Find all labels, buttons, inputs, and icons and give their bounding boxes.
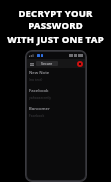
button[interactable]: Bancomer — [27, 104, 85, 122]
staticText: (no text) — [29, 77, 43, 82]
staticText: Facebook — [29, 113, 45, 118]
button[interactable]: Open navigation menu — [29, 61, 35, 67]
button[interactable]: Secure — [36, 61, 58, 66]
staticText: WITH JUST ONE TAP — [3, 33, 108, 46]
staticText: DECRYPT YOUR PASSWORD — [3, 7, 108, 31]
staticText: yahoosecretly — [29, 95, 52, 100]
button[interactable]: Account — [77, 61, 83, 67]
button[interactable]: New Note — [27, 68, 85, 86]
staticText: Facebook — [29, 88, 49, 94]
staticText: New Note — [29, 70, 50, 76]
staticText: Secure — [41, 61, 53, 66]
button[interactable]: Facebook — [27, 86, 85, 104]
staticText: Bancomer — [29, 106, 50, 112]
